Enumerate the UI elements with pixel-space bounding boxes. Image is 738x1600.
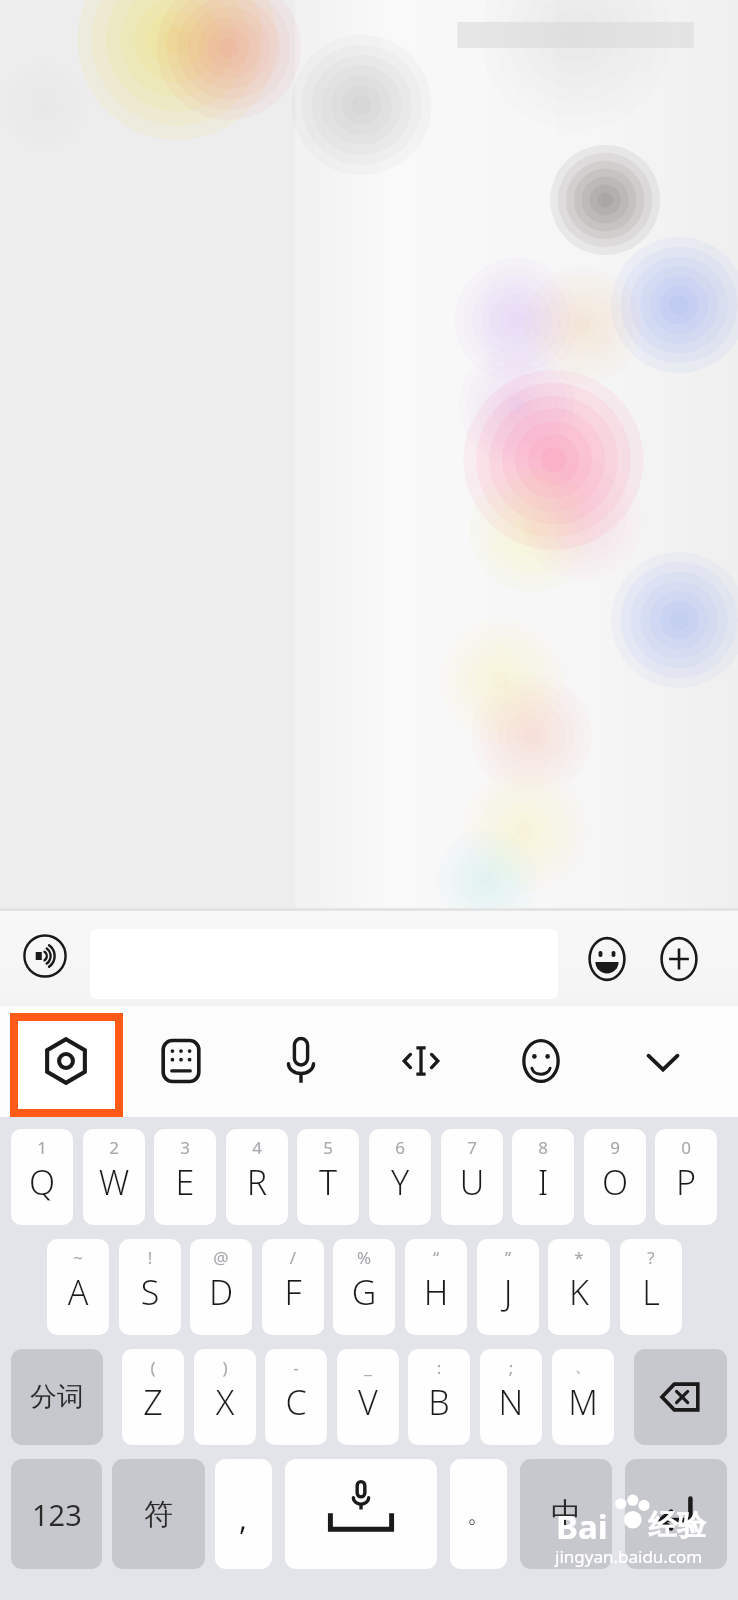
staticText: , [239,1498,248,1539]
staticText: Bai [556,1504,608,1549]
staticText: A [47,1269,109,1315]
staticText: 4 [226,1136,288,1159]
button[interactable]: 8 [512,1129,574,1225]
button[interactable]: 2 [83,1129,145,1225]
staticText: 符 [144,1496,173,1533]
button[interactable]: ( [122,1349,184,1445]
staticText: M [552,1379,614,1425]
button[interactable]: 中 [520,1459,612,1569]
button[interactable]: - [265,1349,327,1445]
button[interactable]: 分词 [11,1349,103,1445]
staticText: C [265,1379,327,1425]
button[interactable]: Enter [625,1459,727,1569]
button[interactable]: Voice broadcast [16,927,74,985]
button[interactable]: _ [337,1349,399,1445]
button[interactable]: 123 [11,1459,102,1569]
staticText: V [337,1379,399,1425]
button[interactable]: 5 [297,1129,359,1225]
staticText: % [333,1246,395,1269]
staticText: ( [122,1356,184,1379]
staticText: @ [190,1246,252,1269]
staticText: 分词 [30,1380,84,1414]
staticText: O [584,1159,646,1205]
button[interactable]: Cursor move [388,1028,454,1094]
staticText: N [480,1379,542,1425]
staticText: “ [405,1246,467,1269]
staticText: jingyan.baidu.com [555,1545,703,1568]
staticText: Z [122,1379,184,1425]
staticText: 经验 [648,1507,706,1544]
button[interactable]: More [650,930,708,988]
button[interactable]: @ [190,1239,252,1335]
staticText: J [477,1269,539,1315]
staticText: ! [119,1246,181,1269]
staticText: 1 [11,1136,73,1159]
staticText: R [226,1159,288,1205]
button[interactable]: 、 [552,1349,614,1445]
staticText: K [548,1269,610,1315]
staticText: 7 [441,1136,503,1159]
staticText: Q [11,1159,73,1205]
staticText: - [265,1356,327,1379]
staticText: 中 [551,1495,581,1533]
button[interactable]: : [408,1349,470,1445]
button[interactable]: Backspace [634,1349,727,1445]
button[interactable]: ? [620,1239,682,1335]
button[interactable]: ~ [47,1239,109,1335]
staticText: G [333,1269,395,1315]
button[interactable]: 符 [112,1459,205,1569]
staticText: 、 [552,1356,614,1377]
staticText: I [512,1159,574,1205]
staticText: ) [194,1356,256,1379]
staticText: X [194,1379,256,1425]
button[interactable]: Voice input [268,1028,334,1094]
button[interactable]: 3 [154,1129,216,1225]
button[interactable]: Keyboard layout [148,1028,214,1094]
button[interactable]: Hide keyboard [630,1028,696,1094]
button[interactable]: / [262,1239,324,1335]
staticText: ” [477,1246,539,1269]
staticText: / [262,1246,324,1269]
button[interactable]: 。 [450,1459,507,1569]
staticText: W [83,1159,145,1205]
button[interactable]: 4 [226,1129,288,1225]
staticText: _ [337,1356,399,1379]
staticText: 6 [369,1136,431,1159]
staticText: E [154,1159,216,1205]
staticText: S [119,1269,181,1315]
staticText: ? [620,1246,682,1269]
button[interactable]: “ [405,1239,467,1335]
button[interactable]: Space [285,1459,437,1569]
button[interactable]: 1 [11,1129,73,1225]
button[interactable]: % [333,1239,395,1335]
staticText: 8 [512,1136,574,1159]
staticText: ; [480,1356,542,1379]
button[interactable]: * [548,1239,610,1335]
staticText: * [548,1246,610,1269]
staticText: B [408,1379,470,1425]
button[interactable]: 0 [655,1129,717,1225]
staticText: 9 [584,1136,646,1159]
staticText: T [297,1159,359,1205]
button[interactable]: Settings [33,1028,99,1094]
button[interactable]: 9 [584,1129,646,1225]
button[interactable]: ” [477,1239,539,1335]
button[interactable]: Emoji [578,930,636,988]
button[interactable]: ; [480,1349,542,1445]
staticText: U [441,1159,503,1205]
staticText: F [262,1269,324,1315]
button[interactable]: ! [119,1239,181,1335]
staticText: 0 [655,1136,717,1159]
button[interactable]: , [215,1459,272,1569]
staticText: Y [369,1159,431,1205]
staticText: L [620,1269,682,1315]
staticText: 5 [297,1136,359,1159]
button[interactable]: 6 [369,1129,431,1225]
button[interactable]: 7 [441,1129,503,1225]
button[interactable]: ) [194,1349,256,1445]
staticText: 2 [83,1136,145,1159]
staticText: D [190,1269,252,1315]
staticText: 123 [32,1495,82,1534]
button[interactable]: Stickers [508,1028,574,1094]
